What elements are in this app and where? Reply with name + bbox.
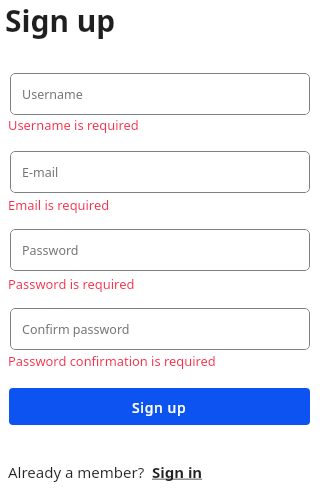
staticText: Username [22,86,83,103]
staticText: Username is required [8,116,139,134]
staticText: Email is required [8,196,110,214]
button[interactable]: Password [10,229,310,271]
button[interactable]: Sign in [152,462,203,482]
staticText: E-mail [22,164,59,181]
staticText: Password [22,242,79,259]
button[interactable]: E-mail [10,151,310,193]
staticText: Password confirmation is required [8,352,216,370]
staticText: Confirm password [22,321,130,338]
button[interactable]: Confirm password [10,308,310,350]
staticText: Sign up [5,0,116,41]
staticText: Sign up [132,398,187,417]
button[interactable]: Sign up [9,388,310,425]
button[interactable]: Username [10,73,310,115]
staticText: Already a member? [8,462,149,482]
staticText: Password is required [8,275,135,293]
